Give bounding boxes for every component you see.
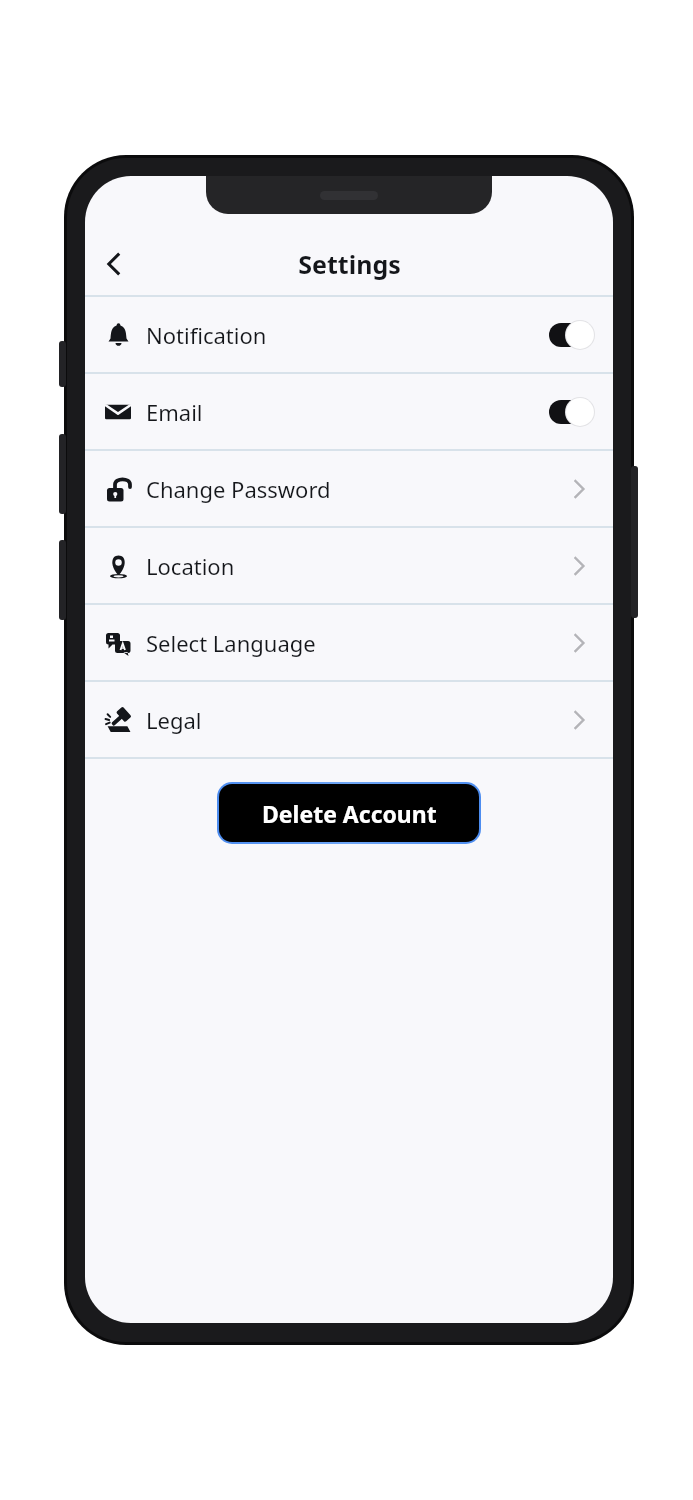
staticText: Select Language — [146, 628, 316, 658]
button[interactable]: Location — [85, 528, 613, 603]
staticText: Email — [146, 397, 203, 427]
button[interactable]: Select Language — [563, 627, 595, 659]
staticText: Settings — [298, 247, 401, 281]
button[interactable]: Select Language — [85, 605, 613, 680]
button[interactable]: Toggle Email — [549, 397, 595, 427]
button[interactable]: Toggle Notification — [549, 320, 595, 350]
button[interactable]: Location — [563, 550, 595, 582]
button[interactable]: Change Password — [563, 473, 595, 505]
button[interactable]: Delete Account — [219, 784, 479, 842]
staticText: Notification — [146, 320, 267, 350]
button[interactable]: Notification — [85, 297, 613, 372]
staticText: Legal — [146, 705, 202, 735]
button[interactable]: Change Password — [85, 451, 613, 526]
button[interactable]: Legal — [563, 704, 595, 736]
staticText: Delete Account — [262, 798, 437, 829]
staticText: Change Password — [146, 474, 331, 504]
staticText: Location — [146, 551, 235, 581]
button[interactable]: Legal — [85, 682, 613, 757]
button[interactable]: Email — [85, 374, 613, 449]
button[interactable]: Back — [91, 241, 137, 287]
